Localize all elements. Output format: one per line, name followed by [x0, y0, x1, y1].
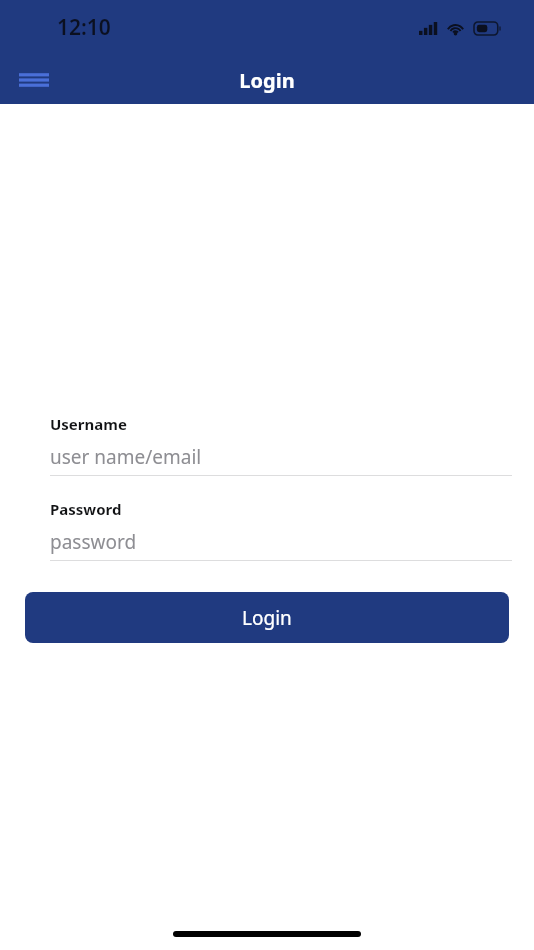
staticText: password	[50, 529, 137, 555]
staticText: Password	[50, 499, 122, 519]
staticText: user name/email	[50, 444, 202, 470]
button[interactable]: Open navigation menu	[11, 57, 57, 103]
staticText: Login	[242, 605, 292, 631]
button[interactable]: password	[0, 528, 534, 556]
button[interactable]: user name/email	[0, 443, 534, 471]
staticText: 12:10	[57, 13, 111, 42]
staticText: Login	[239, 67, 295, 94]
button[interactable]: Login	[25, 592, 509, 643]
staticText: Username	[50, 414, 127, 434]
